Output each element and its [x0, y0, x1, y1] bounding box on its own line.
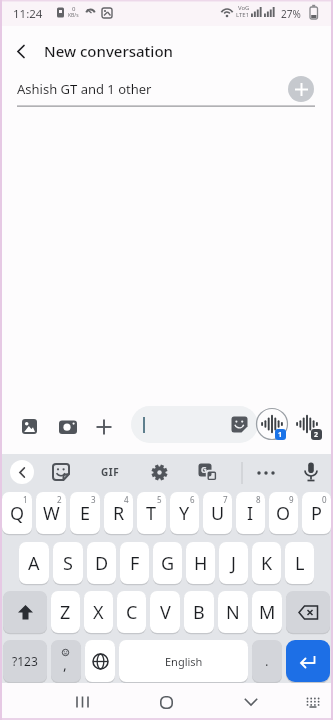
staticText: X [93, 600, 104, 625]
button[interactable]: P [302, 492, 331, 534]
staticText: B [193, 600, 205, 625]
staticText: 2 [314, 430, 319, 440]
button[interactable]: Ashish GT and 1 other [0, 72, 333, 107]
button[interactable] [286, 640, 330, 682]
button[interactable]: N [218, 591, 248, 633]
button[interactable] [297, 686, 329, 718]
staticText: C [126, 600, 138, 625]
button[interactable] [254, 463, 278, 482]
button[interactable]: W [36, 492, 66, 534]
staticText: I [247, 501, 254, 526]
staticText: K [261, 551, 273, 576]
button[interactable] [52, 463, 71, 482]
staticText: 0 [72, 5, 76, 13]
button[interactable]: 1 [255, 407, 289, 441]
staticText: J [231, 551, 236, 576]
button[interactable]: ?123 [3, 640, 47, 682]
staticText: P [311, 501, 322, 526]
staticText: 1 [278, 430, 283, 440]
staticText: 3 [91, 494, 96, 505]
staticText: Y [179, 501, 190, 526]
button[interactable] [235, 686, 267, 718]
button[interactable]: English [119, 640, 248, 682]
staticText: F [130, 551, 140, 576]
button[interactable]: , [51, 640, 81, 682]
button[interactable]: X [84, 591, 113, 633]
staticText: Ashish GT and 1 other [17, 80, 152, 98]
button[interactable] [66, 686, 98, 718]
staticText: S [63, 551, 73, 576]
staticText: . [265, 652, 269, 670]
button[interactable]: B [184, 591, 214, 633]
button[interactable]: . [252, 640, 282, 682]
button[interactable] [288, 76, 314, 102]
button[interactable]: E [70, 492, 100, 534]
staticText: LTE1 [236, 11, 250, 19]
button[interactable]: G [153, 542, 182, 584]
button[interactable]: GIF [101, 465, 120, 479]
staticText: N [226, 600, 240, 625]
staticText: 11:24 [13, 6, 43, 22]
button[interactable]: T [137, 492, 166, 534]
staticText: G [201, 464, 207, 475]
button[interactable] [150, 686, 182, 718]
button[interactable]: K [252, 542, 281, 584]
button[interactable]: S [53, 542, 83, 584]
staticText: 27% [281, 7, 301, 21]
staticText: M [259, 600, 276, 625]
button[interactable]: L [285, 542, 314, 584]
staticText: 1 [23, 494, 28, 505]
staticText: 5 [157, 494, 162, 505]
staticText: 2 [57, 494, 62, 505]
staticText: 7 [223, 494, 228, 505]
button[interactable] [3, 591, 47, 633]
staticText: 0 [322, 494, 327, 505]
staticText: VoG [238, 4, 250, 12]
staticText: 8 [256, 494, 261, 505]
button[interactable] [150, 463, 169, 482]
button[interactable] [10, 460, 34, 484]
staticText: H [194, 551, 208, 576]
button[interactable]: Z [51, 591, 80, 633]
staticText: G [161, 551, 175, 576]
button[interactable]: M [252, 591, 282, 633]
button[interactable]: H [186, 542, 215, 584]
staticText: V [160, 600, 171, 625]
staticText: L [295, 551, 305, 576]
button[interactable]: U [203, 492, 232, 534]
button[interactable] [0, 31, 42, 71]
button[interactable]: I [236, 492, 265, 534]
button[interactable] [53, 412, 83, 442]
button[interactable]: F [120, 542, 149, 584]
button[interactable] [15, 412, 45, 442]
button[interactable]: Q [2, 492, 32, 534]
button[interactable]: 2 [294, 410, 324, 440]
button[interactable] [286, 591, 330, 633]
staticText: A [28, 551, 40, 576]
staticText: E [80, 501, 91, 526]
staticText: 4 [124, 494, 129, 505]
staticText: R [113, 501, 125, 526]
button[interactable]: O [269, 492, 298, 534]
button[interactable]: C [117, 591, 146, 633]
staticText: 9 [289, 494, 294, 505]
staticText: ?123 [12, 653, 38, 669]
button[interactable]: Y [170, 492, 199, 534]
button[interactable] [89, 412, 119, 442]
button[interactable] [131, 406, 258, 443]
staticText: T [146, 501, 157, 526]
button[interactable]: G [198, 463, 217, 482]
button[interactable]: D [87, 542, 116, 584]
staticText: English [165, 654, 203, 669]
button[interactable]: V [150, 591, 180, 633]
staticText: W [43, 501, 60, 526]
button[interactable]: R [104, 492, 133, 534]
staticText: Z [60, 600, 71, 625]
button[interactable] [300, 461, 322, 483]
staticText: , [63, 655, 67, 674]
staticText: 6 [190, 494, 195, 505]
button[interactable] [85, 640, 115, 682]
button[interactable]: A [19, 542, 49, 584]
staticText: D [95, 551, 109, 576]
button[interactable]: J [219, 542, 248, 584]
